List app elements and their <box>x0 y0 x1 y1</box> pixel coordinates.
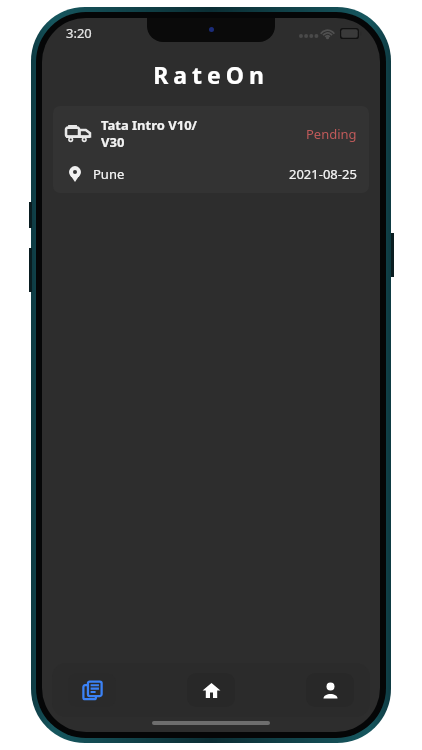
button[interactable]: Home <box>187 673 235 707</box>
staticText: Pune <box>93 165 289 183</box>
staticText: 2021-08-25 <box>289 165 357 183</box>
staticText: Tata Intro V10/ V30 <box>101 116 306 151</box>
staticText: 3:20 <box>66 24 92 42</box>
staticText: RateOn <box>153 59 269 90</box>
button[interactable]: Profile <box>306 673 354 707</box>
button[interactable]: Orders <box>68 673 116 707</box>
button[interactable]: Tata Intro V10/ V30 <box>53 106 369 193</box>
staticText: Pending <box>306 125 357 143</box>
